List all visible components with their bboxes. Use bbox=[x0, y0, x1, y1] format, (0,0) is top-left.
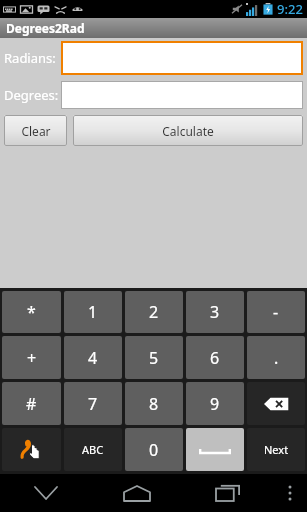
button[interactable]: 8 bbox=[125, 382, 183, 425]
button[interactable]: 6 bbox=[186, 336, 244, 379]
button[interactable]: Backspace bbox=[247, 382, 305, 425]
button[interactable]: # bbox=[2, 382, 61, 425]
button[interactable]: ABC bbox=[64, 428, 122, 471]
staticText: ABC bbox=[82, 442, 104, 457]
button[interactable]: 7 bbox=[64, 382, 122, 425]
staticText: 7 bbox=[88, 393, 98, 415]
button[interactable]: . bbox=[247, 336, 305, 379]
staticText: Next bbox=[264, 442, 289, 457]
staticText: - bbox=[273, 301, 279, 323]
staticText: + bbox=[27, 347, 37, 369]
button[interactable]: Hide keyboard bbox=[0, 474, 91, 512]
button[interactable]: 0 bbox=[125, 428, 183, 471]
staticText: 2 bbox=[149, 301, 159, 323]
button[interactable]: * bbox=[2, 291, 61, 333]
staticText: # bbox=[26, 393, 37, 415]
button[interactable]: Space bbox=[186, 428, 244, 471]
button[interactable]: 3 bbox=[186, 291, 244, 333]
staticText: . bbox=[274, 347, 279, 369]
button[interactable]: Calculate bbox=[73, 115, 303, 146]
button[interactable]: More options bbox=[273, 474, 307, 512]
staticText: 9:22 bbox=[277, 0, 303, 18]
staticText: 8 bbox=[149, 393, 159, 415]
staticText: Clear bbox=[21, 123, 51, 139]
staticText: 0 bbox=[149, 439, 159, 461]
button[interactable] bbox=[61, 81, 303, 109]
button[interactable]: - bbox=[247, 291, 305, 333]
button[interactable]: Home bbox=[91, 474, 182, 512]
staticText: 4 bbox=[88, 347, 98, 369]
button[interactable]: Clear bbox=[4, 115, 67, 146]
button[interactable]: 4 bbox=[64, 336, 122, 379]
staticText: Degrees: bbox=[4, 86, 61, 104]
button[interactable]: Swype gesture input bbox=[2, 428, 61, 471]
button[interactable]: Next bbox=[247, 428, 305, 471]
button[interactable]: 2 bbox=[125, 291, 183, 333]
staticText: 6 bbox=[210, 347, 220, 369]
button[interactable]: Recent apps bbox=[182, 474, 273, 512]
staticText: 5 bbox=[149, 347, 159, 369]
button[interactable]: 1 bbox=[64, 291, 122, 333]
staticText: * bbox=[27, 301, 36, 323]
staticText: Radians: bbox=[4, 49, 61, 67]
staticText: 9 bbox=[210, 393, 220, 415]
staticText: 3 bbox=[210, 301, 220, 323]
button[interactable]: 9 bbox=[186, 382, 244, 425]
staticText: Calculate bbox=[162, 123, 214, 139]
button[interactable] bbox=[61, 41, 303, 75]
button[interactable]: 5 bbox=[125, 336, 183, 379]
staticText: Degrees2Rad bbox=[6, 20, 85, 36]
staticText: 1 bbox=[88, 301, 98, 323]
button[interactable]: + bbox=[2, 336, 61, 379]
